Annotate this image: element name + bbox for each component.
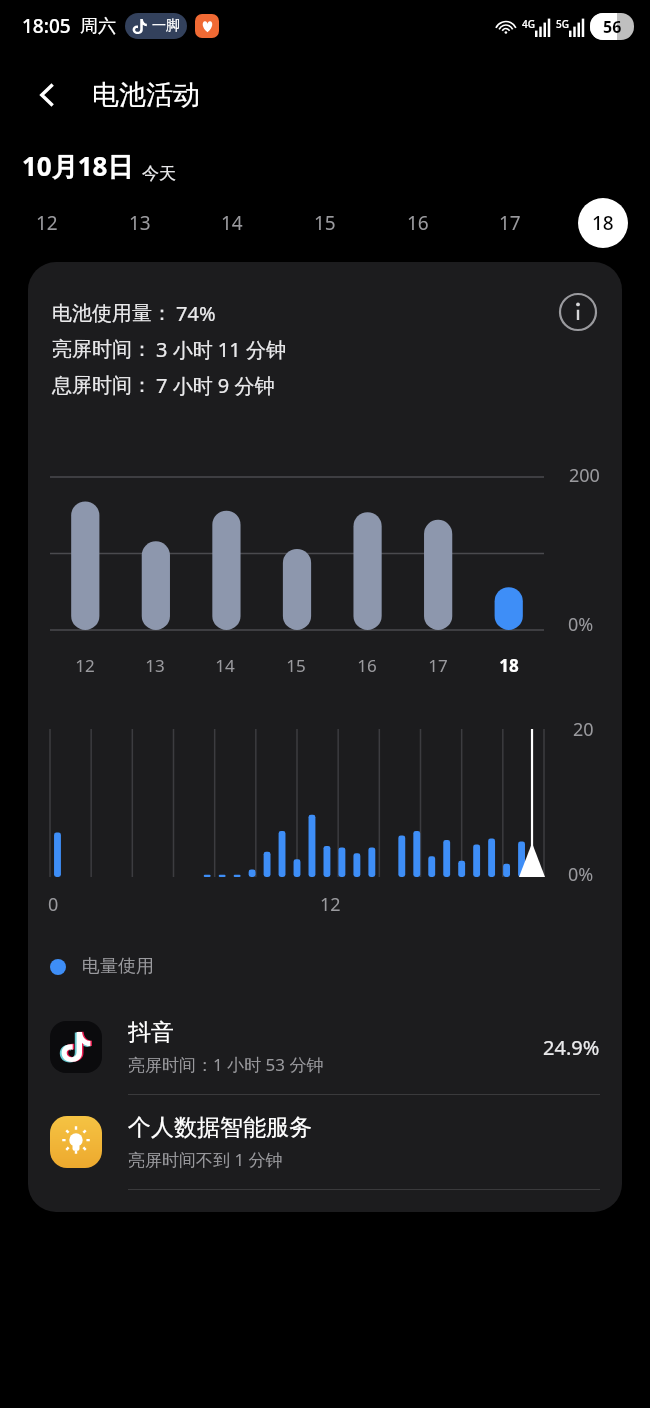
staticText: 周六 xyxy=(80,15,116,38)
staticText: 74% xyxy=(176,300,216,327)
button[interactable]: 16 xyxy=(393,198,443,248)
staticText: 一脚 xyxy=(152,17,180,35)
staticText: 13 xyxy=(145,654,165,677)
staticText: 12 xyxy=(320,892,341,917)
staticText: 12 xyxy=(36,210,58,236)
button[interactable]: 13 xyxy=(115,198,165,248)
staticText: 亮屏时间： xyxy=(52,337,152,362)
button[interactable]: 14 xyxy=(207,198,257,248)
button[interactable]: Back xyxy=(20,67,76,123)
button[interactable]: 18 xyxy=(578,198,628,248)
staticText: 16 xyxy=(357,654,377,677)
staticText: 17 xyxy=(428,654,448,677)
staticText: 17 xyxy=(499,210,521,236)
staticText: 亮屏时间不到 1 分钟 xyxy=(128,1148,283,1171)
staticText: 亮屏时间：1 小时 53 分钟 xyxy=(128,1053,324,1076)
staticText: 20 xyxy=(573,717,594,742)
staticText: 0% xyxy=(568,862,594,887)
staticText: 息屏时间： xyxy=(52,373,152,398)
button[interactable]: 12 xyxy=(22,198,72,248)
button[interactable]: 个人数据智能服务 xyxy=(28,1095,622,1190)
staticText: 12 xyxy=(75,654,95,677)
staticText: 抖音 xyxy=(128,1018,174,1047)
staticText: 14 xyxy=(221,210,243,236)
staticText: 24.9% xyxy=(543,1034,600,1061)
staticText: 7 小时 9 分钟 xyxy=(156,372,275,399)
staticText: 10月18日 xyxy=(22,148,134,184)
button[interactable]: 电量使用 xyxy=(50,955,622,978)
staticText: 56 xyxy=(603,16,622,38)
staticText: 13 xyxy=(129,210,151,236)
button[interactable]: Information xyxy=(556,290,600,334)
staticText: 18 xyxy=(592,210,614,236)
staticText: 15 xyxy=(286,654,306,677)
staticText: 16 xyxy=(407,210,429,236)
staticText: 电池活动 xyxy=(92,78,200,112)
staticText: 5G xyxy=(556,17,569,31)
staticText: 个人数据智能服务 xyxy=(128,1113,312,1142)
staticText: 今天 xyxy=(142,163,176,184)
staticText: 14 xyxy=(215,654,235,677)
button[interactable]: 17 xyxy=(485,198,535,248)
staticText: 18 xyxy=(499,654,519,677)
staticText: 200 xyxy=(569,463,600,488)
staticText: 4G xyxy=(522,17,535,31)
staticText: 18:05 xyxy=(22,13,71,39)
staticText: 15 xyxy=(314,210,336,236)
staticText: 0% xyxy=(568,612,594,637)
staticText: 3 小时 11 分钟 xyxy=(156,336,286,363)
button[interactable]: 15 xyxy=(300,198,350,248)
staticText: 0 xyxy=(48,892,59,917)
staticText: 电量使用 xyxy=(82,955,154,978)
staticText: 电池使用量： xyxy=(52,301,172,326)
button[interactable]: 抖音 xyxy=(28,1000,622,1095)
